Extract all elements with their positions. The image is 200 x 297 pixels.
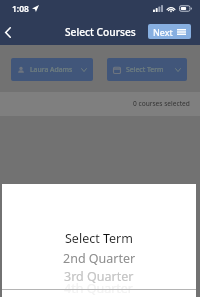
staticText: Select Term (65, 230, 133, 247)
button[interactable]: Back (0, 24, 16, 40)
button[interactable]: Next (148, 24, 191, 39)
staticText: Laura Adams (30, 65, 73, 74)
staticText: Next (153, 26, 173, 38)
staticText: 2nd Quarter (63, 250, 136, 267)
button[interactable]: Select Term (2, 184, 196, 297)
button[interactable]: Select Term (107, 58, 187, 81)
staticText: Select Courses (65, 25, 136, 39)
staticText: 0 courses selected (133, 99, 190, 108)
staticText: 1:08 (12, 3, 29, 15)
staticText: 3rd Quarter (64, 268, 134, 285)
button[interactable]: Laura Adams (11, 58, 93, 81)
staticText: Select Term (126, 65, 164, 74)
staticText: 4th Quarter (64, 280, 134, 297)
